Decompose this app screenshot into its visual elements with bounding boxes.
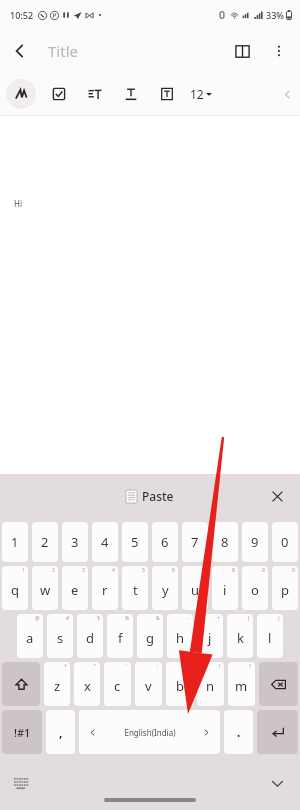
button[interactable]: Close xyxy=(264,483,290,509)
button[interactable]: + xyxy=(197,614,223,658)
staticText: v xyxy=(145,677,152,695)
staticText: 1 xyxy=(11,533,19,551)
button[interactable]: Keyboard layout xyxy=(8,770,34,796)
button[interactable]: 8 xyxy=(212,566,238,610)
button[interactable]: 7 xyxy=(182,566,208,610)
button[interactable]: 5 xyxy=(122,522,148,562)
button[interactable]: Shift xyxy=(2,662,40,706)
staticText: & xyxy=(156,615,160,622)
staticText: 3 xyxy=(71,533,79,551)
staticText: w xyxy=(40,581,51,599)
button[interactable]: 12 xyxy=(188,82,214,106)
button[interactable]: More options xyxy=(262,34,296,68)
button[interactable]: 0 xyxy=(272,566,298,610)
staticText: 33% xyxy=(266,9,284,21)
button[interactable]: 9 xyxy=(242,522,268,562)
staticText: e xyxy=(71,581,79,599)
button[interactable]: Back xyxy=(0,31,40,71)
button[interactable]: Paragraph style xyxy=(82,81,108,107)
button[interactable]: & xyxy=(137,614,163,658)
button[interactable]: Text style xyxy=(118,81,144,107)
button[interactable]: . xyxy=(224,710,253,754)
button[interactable]: 5 xyxy=(122,566,148,610)
button[interactable]: $ xyxy=(77,614,103,658)
button[interactable]: 4 xyxy=(92,522,118,562)
button[interactable]: 6 xyxy=(152,522,178,562)
staticText: English(India) xyxy=(124,727,176,738)
staticText: 5 xyxy=(142,567,145,574)
staticText: , xyxy=(59,724,63,740)
staticText: Title xyxy=(48,41,222,61)
button[interactable]: 8 xyxy=(212,522,238,562)
button[interactable]: ! xyxy=(197,662,224,706)
button[interactable]: - xyxy=(167,614,193,658)
staticText: 3 xyxy=(82,567,85,574)
button[interactable]: 4 xyxy=(92,566,118,610)
staticText: z xyxy=(54,677,61,695)
staticText: 7 xyxy=(202,567,205,574)
button[interactable]: Enter xyxy=(257,710,298,754)
button[interactable]: Collapse toolbar xyxy=(276,83,298,105)
staticText: t xyxy=(133,581,138,599)
button[interactable]: Paste xyxy=(126,488,174,504)
button[interactable]: 2 xyxy=(32,566,58,610)
button[interactable]: 3 xyxy=(62,522,88,562)
button[interactable]: ( xyxy=(227,614,253,658)
staticText: 10:52 xyxy=(10,9,34,21)
staticText: @ xyxy=(35,615,40,622)
staticText: ! xyxy=(219,663,221,670)
staticText: Paste xyxy=(142,488,174,504)
button[interactable]: ' xyxy=(104,662,131,706)
staticText: * xyxy=(64,663,67,670)
button[interactable]: # xyxy=(47,614,73,658)
staticText: : xyxy=(157,663,159,670)
button[interactable]: Text box xyxy=(154,81,180,107)
staticText: u xyxy=(191,581,200,599)
staticText: - xyxy=(188,615,190,622)
staticText: x xyxy=(84,677,91,695)
button[interactable]: Backspace xyxy=(259,662,298,706)
staticText: 6 xyxy=(161,533,169,551)
button[interactable]: % xyxy=(107,614,133,658)
staticText: # xyxy=(66,615,70,622)
button[interactable]: Space xyxy=(79,710,220,754)
button[interactable]: Checklist xyxy=(46,81,72,107)
staticText: 2 xyxy=(52,567,55,574)
button[interactable]: 6 xyxy=(152,566,178,610)
button[interactable]: Reading view xyxy=(222,31,262,71)
staticText: . xyxy=(237,724,241,740)
button[interactable]: 9 xyxy=(242,566,268,610)
button[interactable]: ) xyxy=(257,614,283,658)
staticText: q xyxy=(11,581,19,599)
staticText: d xyxy=(86,629,94,647)
staticText: a xyxy=(26,629,34,647)
staticText: 6 xyxy=(172,567,175,574)
button[interactable]: ? xyxy=(228,662,255,706)
button[interactable]: 2 xyxy=(32,522,58,562)
button[interactable]: " xyxy=(74,662,100,706)
staticText: 8 xyxy=(221,533,229,551)
staticText: m xyxy=(235,677,248,695)
button[interactable]: , xyxy=(46,710,75,754)
button[interactable]: ; xyxy=(166,662,193,706)
staticText: Hi xyxy=(14,198,22,209)
button[interactable]: 3 xyxy=(62,566,88,610)
button[interactable]: 7 xyxy=(182,522,208,562)
staticText: k xyxy=(237,629,244,647)
button[interactable]: 1 xyxy=(2,522,28,562)
button[interactable]: Handwriting xyxy=(6,79,36,109)
staticText: 7 xyxy=(191,533,199,551)
staticText: ? xyxy=(249,663,252,670)
button[interactable]: Hide keyboard xyxy=(264,770,290,796)
staticText: g xyxy=(146,629,154,647)
button[interactable]: @ xyxy=(17,614,43,658)
button[interactable]: 1 xyxy=(2,566,28,610)
staticText: f xyxy=(118,629,123,647)
button[interactable]: !#1 xyxy=(2,710,42,754)
staticText: 2 xyxy=(41,533,49,551)
button[interactable]: 0 xyxy=(272,522,298,562)
staticText: 9 xyxy=(262,567,265,574)
button[interactable]: * xyxy=(44,662,70,706)
button[interactable]: : xyxy=(135,662,162,706)
